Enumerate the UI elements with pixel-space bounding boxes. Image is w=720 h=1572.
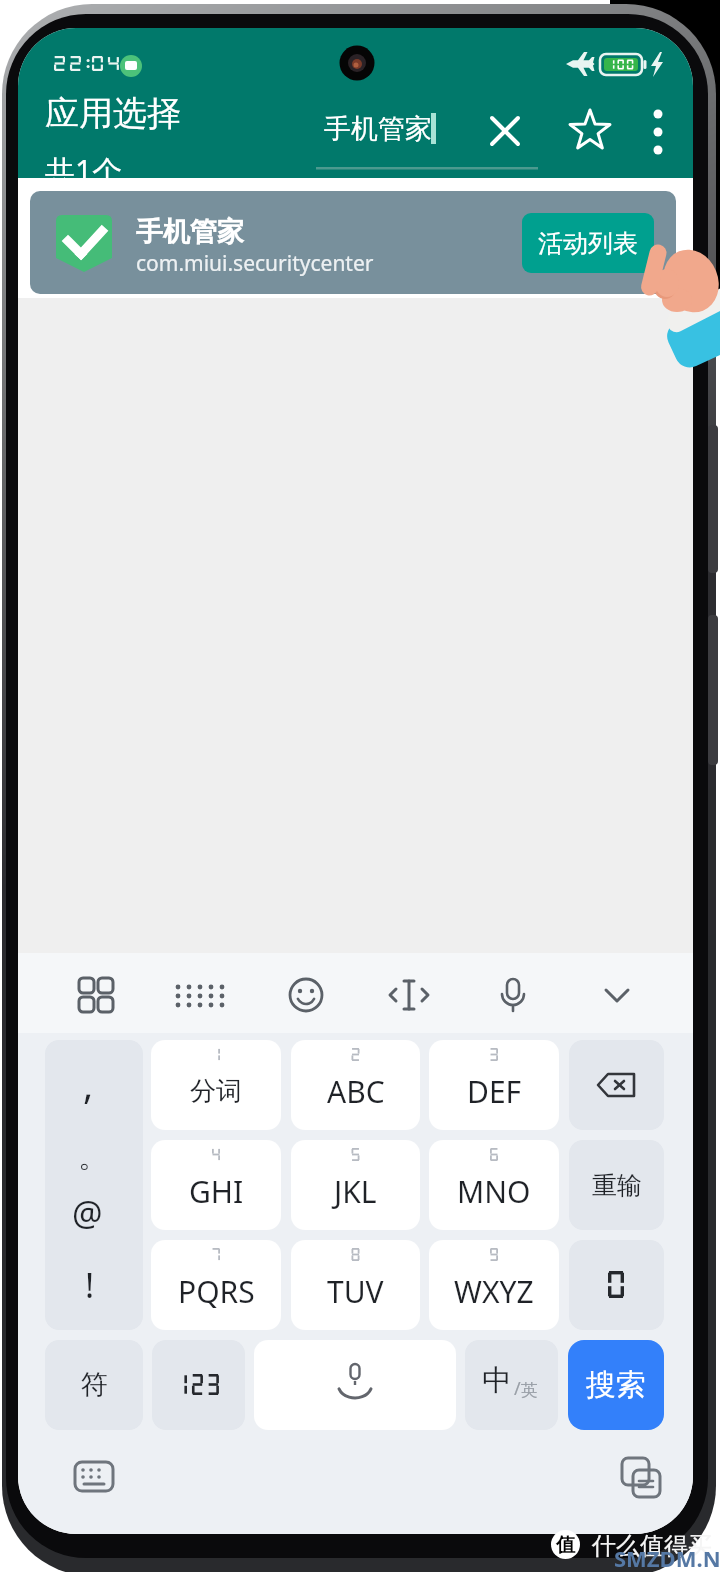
staticText: DEF — [467, 1071, 522, 1112]
button[interactable]: 中 — [465, 1340, 558, 1430]
button[interactable]: , — [45, 1040, 143, 1330]
staticText: MNO — [457, 1171, 531, 1212]
staticText: 共1个 — [45, 150, 123, 178]
staticText: 中 — [482, 1362, 511, 1399]
staticText: ! — [85, 1262, 95, 1308]
button[interactable]: PQRS — [151, 1240, 281, 1330]
staticText: 。 — [78, 1138, 108, 1176]
staticText: 应用选择 — [45, 92, 181, 135]
staticText: 搜索 — [586, 1366, 646, 1404]
button[interactable]: ABC — [291, 1040, 420, 1130]
button[interactable]: GHI — [151, 1140, 281, 1230]
staticText: @ — [72, 1190, 103, 1236]
staticText: com.miui.securitycenter — [136, 249, 374, 278]
staticText: JKL — [334, 1171, 377, 1212]
button[interactable]: 分词 — [151, 1040, 281, 1130]
button[interactable]: JKL — [291, 1140, 420, 1230]
button[interactable] — [152, 1340, 245, 1430]
button[interactable]: MNO — [429, 1140, 559, 1230]
button[interactable]: TUV — [291, 1240, 420, 1330]
button[interactable]: 符 — [45, 1340, 143, 1430]
button[interactable]: DEF — [429, 1040, 559, 1130]
button[interactable]: 活动列表 — [522, 213, 654, 273]
staticText: 英 — [521, 1380, 538, 1401]
staticText: SMZDM.NET — [614, 1543, 720, 1572]
button[interactable]: 搜索 — [568, 1340, 664, 1430]
staticText: 活动列表 — [538, 228, 638, 259]
button[interactable] — [569, 1040, 664, 1130]
staticText: GHI — [189, 1171, 244, 1212]
staticText: 手机管家 — [324, 112, 432, 146]
staticText: 值 — [556, 1533, 575, 1557]
staticText: , — [83, 1058, 94, 1110]
staticText: TUV — [327, 1271, 384, 1312]
staticText: 重输 — [592, 1170, 642, 1201]
staticText: 分词 — [190, 1075, 242, 1108]
button[interactable] — [254, 1340, 456, 1430]
staticText: / — [514, 1376, 521, 1401]
staticText: WXYZ — [454, 1271, 534, 1312]
staticText: 手机管家 — [136, 215, 244, 249]
staticText: 符 — [81, 1368, 108, 1402]
staticText: ABC — [327, 1071, 385, 1112]
button[interactable]: 手机管家 — [30, 191, 676, 294]
button[interactable]: 重输 — [569, 1140, 664, 1230]
button[interactable]: WXYZ — [429, 1240, 559, 1330]
staticText: PQRS — [178, 1271, 255, 1312]
staticText: 什么值得买 — [592, 1531, 712, 1561]
button[interactable] — [569, 1240, 664, 1330]
